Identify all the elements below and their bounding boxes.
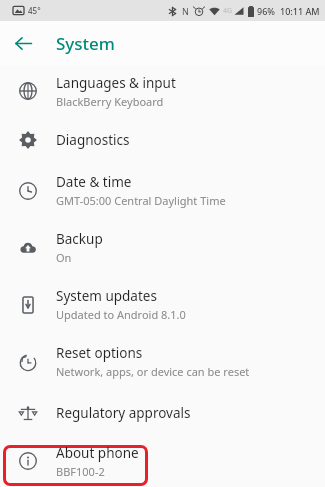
button[interactable]: Backup <box>0 219 325 276</box>
staticText: 4G <box>223 6 233 16</box>
staticText: 10:11 AM <box>280 5 320 17</box>
staticText: Languages & input <box>56 74 176 92</box>
button[interactable]: Languages & input <box>0 65 325 117</box>
staticText: Reset options <box>56 344 143 362</box>
button[interactable]: About phone <box>0 435 325 487</box>
button[interactable]: System updates <box>0 276 325 333</box>
staticText: Backup <box>56 230 103 248</box>
staticText: Diagnostics <box>56 131 130 149</box>
staticText: About phone <box>56 444 139 462</box>
staticText: On <box>56 250 72 265</box>
button[interactable]: Date & time <box>0 162 325 219</box>
staticText: N <box>182 5 189 17</box>
staticText: GMT-05:00 Central Daylight Time <box>56 193 226 208</box>
button[interactable]: Diagnostics <box>0 117 325 162</box>
staticText: Network, apps, or device can be reset <box>56 364 250 379</box>
staticText: Updated to Android 8.1.0 <box>56 307 186 322</box>
staticText: BlackBerry Keyboard <box>56 94 164 109</box>
staticText: System <box>56 32 115 55</box>
staticText: Regulatory approvals <box>56 404 191 422</box>
staticText: 45° <box>28 5 41 16</box>
staticText: 96% <box>257 5 275 17</box>
staticText: Date & time <box>56 173 132 191</box>
button[interactable]: Reset options <box>0 333 325 390</box>
staticText: BBF100-2 <box>56 464 105 479</box>
staticText: System updates <box>56 287 157 305</box>
button[interactable]: Back <box>6 26 40 60</box>
button[interactable]: Regulatory approvals <box>0 390 325 435</box>
